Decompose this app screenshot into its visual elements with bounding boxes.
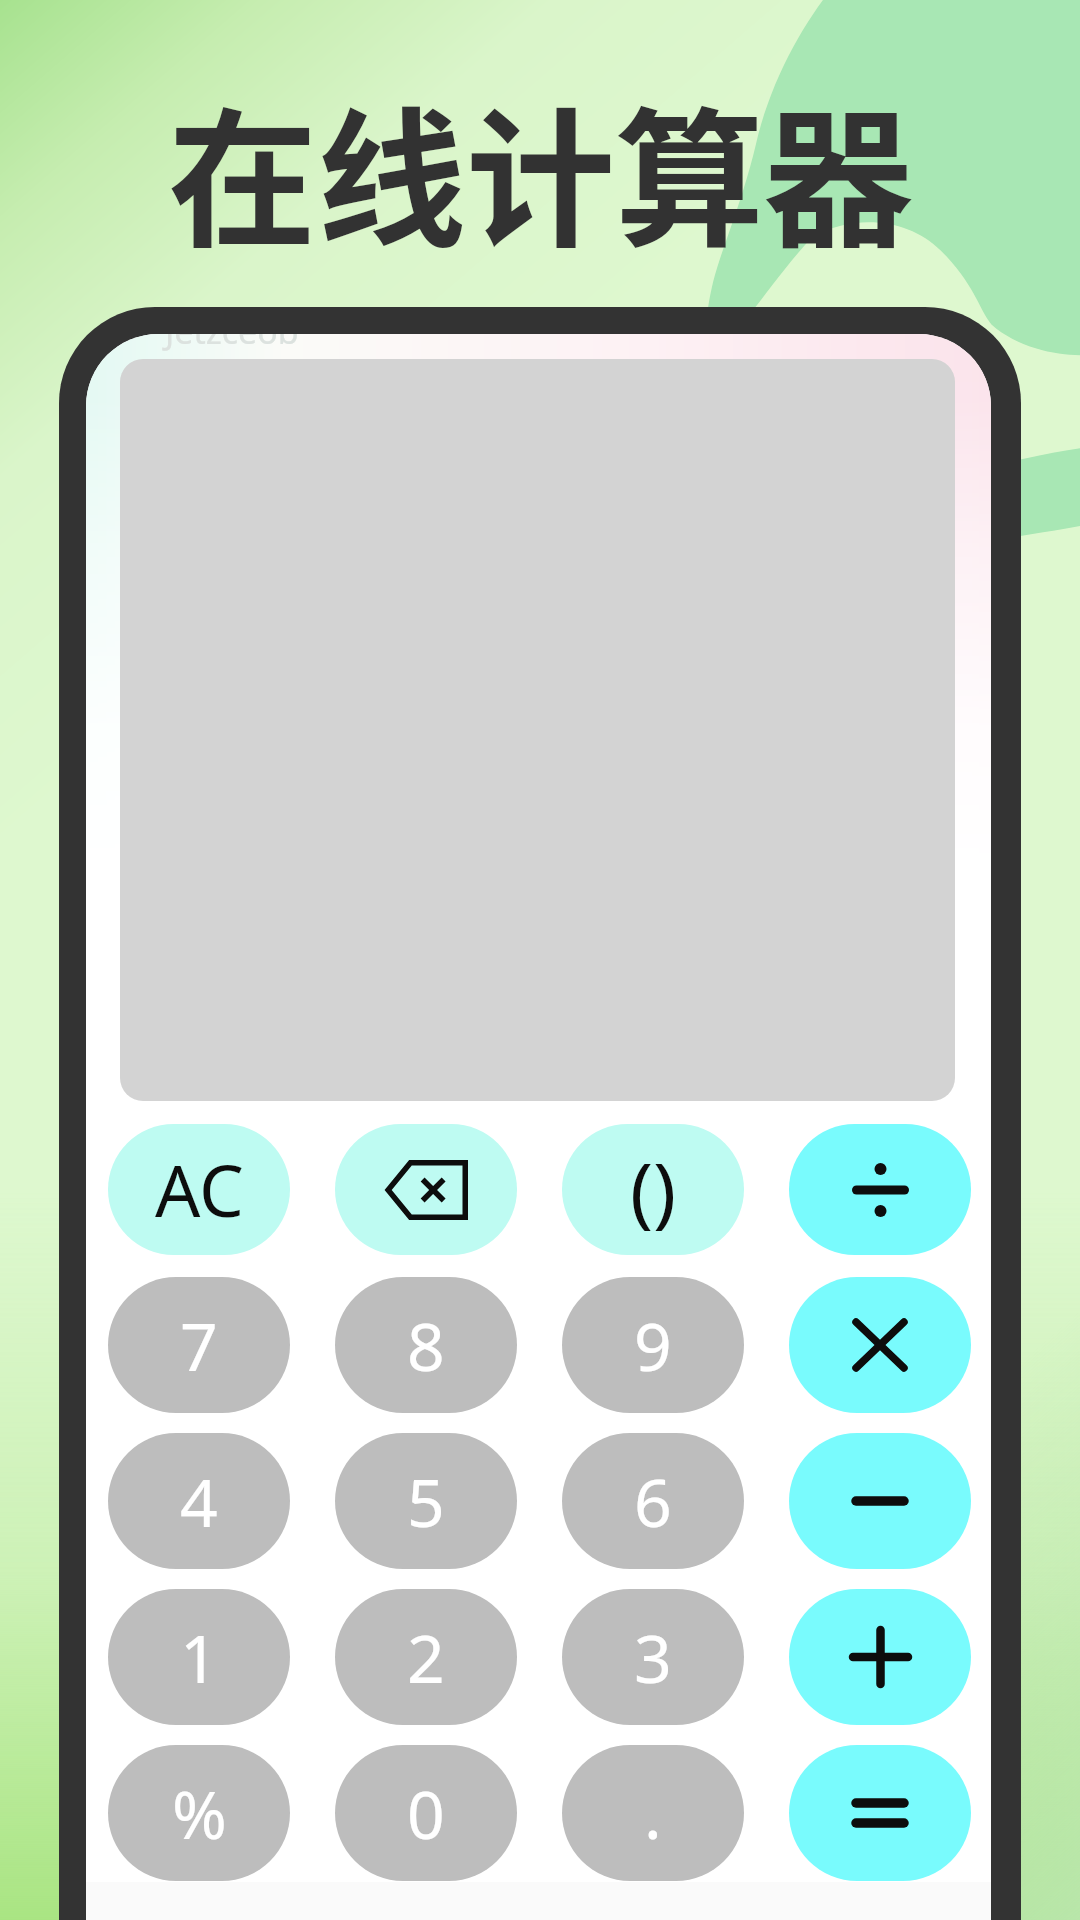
staticText: 3 <box>634 1612 672 1702</box>
button[interactable]: 0 <box>335 1745 517 1881</box>
button[interactable]: 1 <box>108 1589 290 1725</box>
button[interactable]: 4 <box>108 1433 290 1569</box>
staticText: 5 <box>407 1456 445 1546</box>
staticText: . <box>644 1768 662 1858</box>
button[interactable]: Backspace <box>335 1124 517 1255</box>
staticText: % <box>172 1768 227 1858</box>
button[interactable]: Divide <box>789 1124 971 1255</box>
staticText: () <box>630 1137 677 1242</box>
button[interactable]: 5 <box>335 1433 517 1569</box>
staticText: 0 <box>407 1768 445 1858</box>
button[interactable]: Multiply <box>789 1277 971 1413</box>
button[interactable]: 3 <box>562 1589 744 1725</box>
staticText: 1 <box>180 1612 218 1702</box>
staticText: 7 <box>180 1300 218 1390</box>
button[interactable]: 7 <box>108 1277 290 1413</box>
staticText: 8 <box>407 1300 445 1390</box>
button[interactable]: 2 <box>335 1589 517 1725</box>
button[interactable]: . <box>562 1745 744 1881</box>
button[interactable]: () <box>562 1124 744 1255</box>
staticText: 4 <box>180 1456 218 1546</box>
button[interactable]: 9 <box>562 1277 744 1413</box>
button[interactable]: % <box>108 1745 290 1881</box>
button[interactable]: Plus <box>789 1589 971 1725</box>
staticText: AC <box>155 1141 244 1238</box>
staticText: 2 <box>407 1612 445 1702</box>
staticText: 9 <box>634 1300 672 1390</box>
staticText: 在线计算器 <box>168 61 913 277</box>
button[interactable]: 6 <box>562 1433 744 1569</box>
button[interactable]: 8 <box>335 1277 517 1413</box>
button[interactable]: AC <box>108 1124 290 1255</box>
button[interactable]: Minus <box>789 1433 971 1569</box>
button[interactable]: Equals <box>789 1745 971 1881</box>
staticText: 6 <box>634 1456 672 1546</box>
staticText: Jetzceob <box>165 334 299 354</box>
